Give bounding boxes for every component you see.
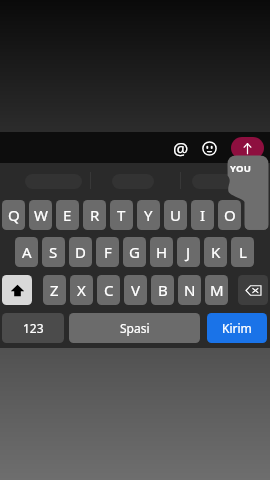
button[interactable]: T (110, 200, 133, 230)
button[interactable]: M (205, 275, 228, 305)
staticText: L (239, 242, 247, 262)
button[interactable]: L (231, 237, 254, 267)
button[interactable]: A (15, 237, 38, 267)
button[interactable]: W (29, 200, 52, 230)
staticText: YOU (230, 162, 252, 175)
button[interactable]: Q (2, 200, 25, 230)
button[interactable]: O (218, 200, 241, 230)
staticText: V (131, 280, 141, 300)
button[interactable]: D (69, 237, 92, 267)
staticText: S (49, 242, 58, 262)
staticText: D (75, 242, 86, 262)
button[interactable]: B (151, 275, 174, 305)
button[interactable]: Z (43, 275, 66, 305)
staticText: X (77, 280, 86, 300)
button[interactable]: Mention (167, 134, 195, 162)
button[interactable]: R (83, 200, 106, 230)
staticText: Y (144, 205, 153, 225)
staticText: E (63, 205, 72, 225)
button[interactable]: Kirim (207, 313, 267, 343)
staticText: A (22, 242, 32, 262)
button[interactable]: Spasi (69, 313, 200, 343)
staticText: Kirim (222, 320, 252, 336)
button[interactable]: E (56, 200, 79, 230)
button[interactable]: Suggestion (192, 174, 234, 189)
button[interactable]: P (245, 200, 268, 230)
button[interactable]: Send (231, 137, 264, 159)
button[interactable]: V (124, 275, 147, 305)
staticText: H (156, 242, 168, 262)
button[interactable]: F (96, 237, 119, 267)
staticText: T (117, 205, 126, 225)
button[interactable]: Backspace (238, 275, 268, 305)
button[interactable]: N (178, 275, 201, 305)
staticText: M (210, 280, 224, 300)
button[interactable]: S (42, 237, 65, 267)
staticText: J (186, 242, 191, 262)
button[interactable]: X (70, 275, 93, 305)
button[interactable]: J (177, 237, 200, 267)
staticText: Z (50, 280, 59, 300)
staticText: N (184, 280, 196, 300)
button[interactable]: H (150, 237, 173, 267)
staticText: R (90, 205, 100, 225)
staticText: F (104, 242, 112, 262)
staticText: Spasi (120, 320, 150, 336)
staticText: 123 (23, 320, 44, 336)
button[interactable]: I (191, 200, 214, 230)
staticText: @ (173, 137, 189, 160)
staticText: O (224, 205, 236, 225)
button[interactable]: Y (137, 200, 160, 230)
staticText: U (170, 205, 181, 225)
staticText: W (34, 205, 48, 225)
button[interactable]: K (204, 237, 227, 267)
button[interactable]: Shift (2, 275, 32, 305)
staticText: K (211, 242, 221, 262)
staticText: Q (8, 205, 20, 225)
button[interactable]: 123 (2, 313, 64, 343)
staticText: I (200, 205, 206, 225)
button[interactable]: U (164, 200, 187, 230)
button[interactable]: C (97, 275, 120, 305)
staticText: B (158, 280, 168, 300)
staticText: C (104, 280, 114, 300)
staticText: G (129, 242, 140, 262)
button[interactable]: G (123, 237, 146, 267)
button[interactable]: Emoji (195, 134, 223, 162)
